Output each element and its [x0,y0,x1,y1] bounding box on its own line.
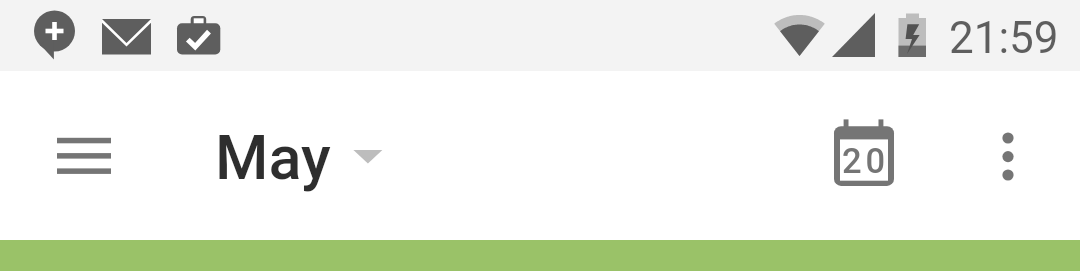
button[interactable]: May [215,112,383,202]
button[interactable]: Go to today [820,104,910,194]
staticText: 21:59 [949,12,1059,64]
staticText: May [215,122,331,193]
staticText: 20 [842,141,890,181]
button[interactable]: Open navigation drawer [28,115,140,195]
button[interactable]: More options [975,110,1041,190]
